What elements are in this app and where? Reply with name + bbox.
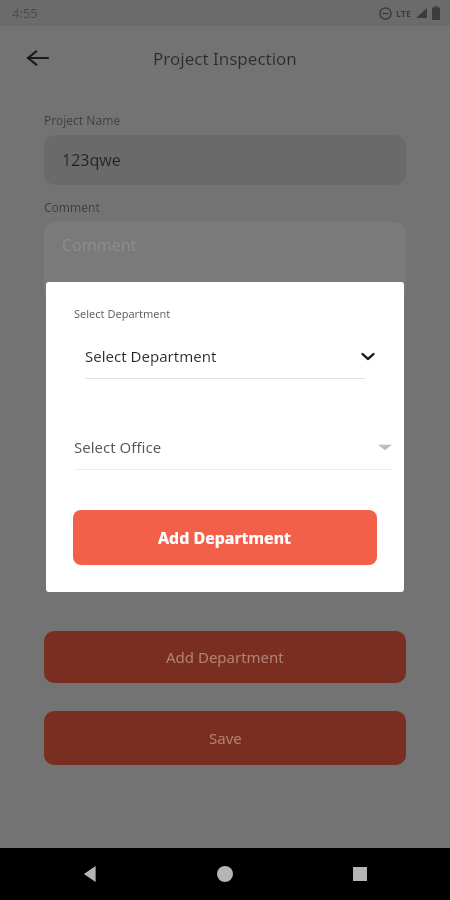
staticText: Save bbox=[209, 728, 242, 748]
staticText: Project Inspection bbox=[153, 47, 297, 70]
staticText: 4:55 bbox=[12, 4, 38, 22]
staticText: Comment bbox=[44, 199, 100, 215]
staticText: Select Department bbox=[74, 306, 171, 321]
button[interactable]: Add Department bbox=[44, 631, 406, 683]
staticText: Select Department bbox=[85, 346, 217, 366]
button[interactable]: Back bbox=[70, 854, 110, 894]
button[interactable]: Add Department bbox=[73, 510, 377, 565]
button[interactable]: Back bbox=[16, 36, 60, 80]
button[interactable]: Home bbox=[205, 854, 245, 894]
staticText: Add Department bbox=[158, 527, 292, 549]
button[interactable]: Save bbox=[44, 711, 406, 765]
staticText: LTE bbox=[396, 7, 412, 19]
staticText: Add Department bbox=[166, 647, 284, 667]
button[interactable]: Recent apps bbox=[340, 854, 380, 894]
staticText: Comment bbox=[62, 234, 137, 256]
button[interactable]: Select Office bbox=[74, 425, 392, 469]
button[interactable]: Comment bbox=[44, 222, 406, 302]
staticText: Select Office bbox=[74, 437, 162, 457]
button[interactable]: Select Department bbox=[74, 334, 376, 378]
button[interactable]: 123qwe bbox=[44, 135, 406, 185]
staticText: Project Name bbox=[44, 112, 121, 128]
staticText: 123qwe bbox=[62, 149, 121, 171]
